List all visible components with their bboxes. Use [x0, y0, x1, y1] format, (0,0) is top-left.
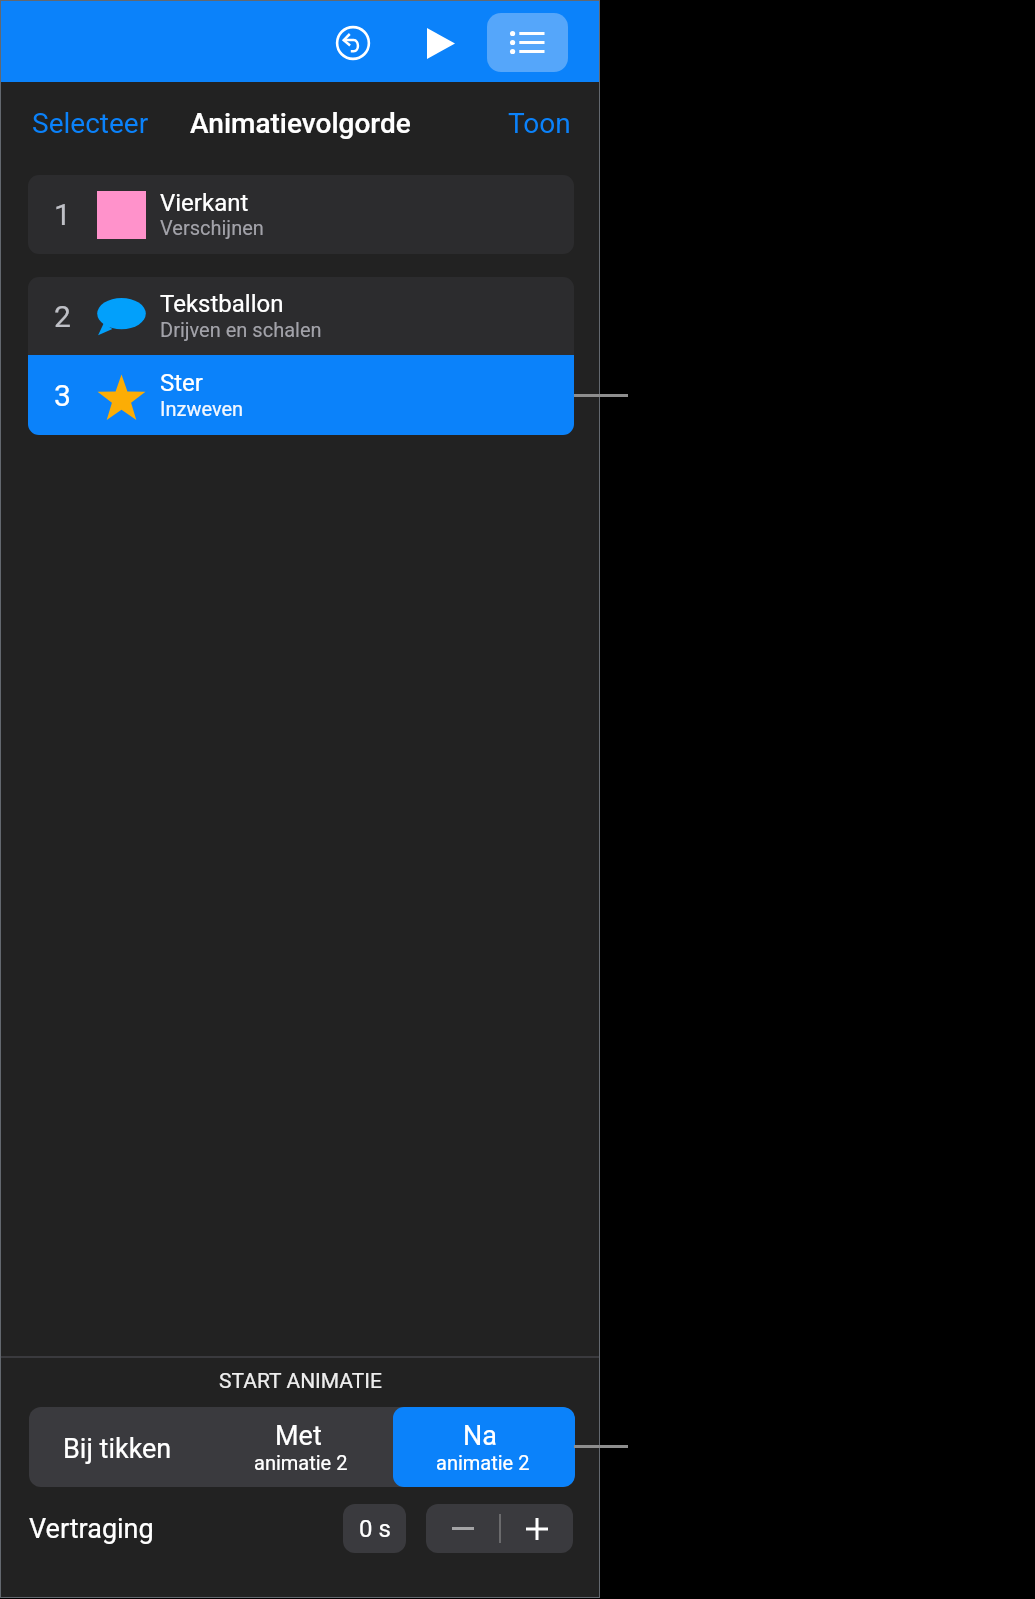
staticText: animatie 2: [254, 1451, 348, 1474]
staticText: Vierkant: [160, 189, 249, 217]
button[interactable]: 0 s: [343, 1504, 406, 1553]
staticText: 3: [54, 378, 71, 413]
staticText: animatie 2: [436, 1451, 530, 1474]
staticText: Selecteer: [32, 107, 149, 140]
staticText: START ANIMATIE: [219, 1369, 382, 1394]
staticText: Tekstballon: [160, 290, 284, 318]
staticText: Toon: [508, 107, 571, 140]
staticText: Na: [463, 1420, 497, 1452]
button[interactable]: Increase delay: [501, 1504, 573, 1553]
staticText: Verschijnen: [160, 216, 264, 239]
staticText: 2: [54, 299, 71, 334]
button[interactable]: Na: [393, 1407, 575, 1487]
staticText: Met: [275, 1420, 322, 1452]
button[interactable]: Met: [211, 1407, 393, 1487]
button[interactable]: Selecteer: [17, 101, 164, 146]
button[interactable]: 2: [28, 277, 574, 355]
staticText: Bij tikken: [63, 1433, 172, 1465]
button[interactable]: 3: [28, 355, 574, 435]
staticText: Drijven en schalen: [160, 318, 322, 341]
staticText: 0 s: [359, 1515, 391, 1543]
staticText: Animatievolgorde: [190, 107, 411, 140]
button[interactable]: Undo: [326, 16, 379, 69]
button[interactable]: Play: [414, 17, 467, 70]
button[interactable]: Decrease delay: [426, 1504, 499, 1553]
staticText: 1: [54, 197, 71, 232]
staticText: Ster: [160, 369, 203, 397]
staticText: Inzweven: [160, 397, 244, 420]
staticText: Vertraging: [29, 1513, 154, 1545]
button[interactable]: 1: [28, 175, 574, 254]
button[interactable]: Toon: [493, 101, 586, 146]
button[interactable]: Bij tikken: [29, 1407, 211, 1487]
button[interactable]: Animation order: [487, 13, 568, 72]
